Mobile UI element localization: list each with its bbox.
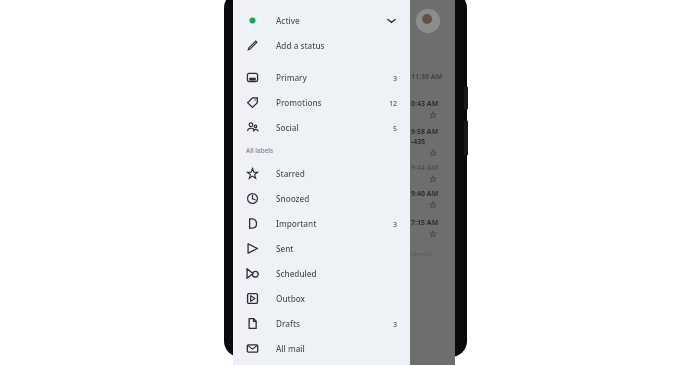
staticText: 7:15 AM <box>411 218 439 228</box>
staticText: Scheduled <box>276 268 317 279</box>
staticText: identity <box>411 250 433 258</box>
staticText: 9:40 AM <box>411 189 439 199</box>
staticText: 0:43 AM <box>411 99 439 109</box>
button[interactable]: Active <box>233 8 410 33</box>
staticText: 3 <box>393 73 398 83</box>
button[interactable]: Scheduled <box>233 261 410 286</box>
button[interactable]: Primary <box>233 65 410 90</box>
button[interactable]: Important <box>233 211 410 236</box>
staticText: All labels <box>246 146 274 155</box>
other: Expand status <box>385 14 398 27</box>
staticText: Promotions <box>276 97 322 108</box>
staticText: Social <box>276 122 299 133</box>
button[interactable]: Add a status <box>233 33 410 58</box>
staticText: 5 <box>393 123 398 133</box>
staticText: All mail <box>276 343 305 354</box>
staticText: 12 <box>389 98 398 108</box>
staticText: -435 <box>411 137 426 147</box>
staticText: 3 <box>393 319 398 329</box>
button[interactable]: Social <box>233 115 410 140</box>
button[interactable]: Drafts <box>233 311 410 336</box>
staticText: Important <box>276 218 317 229</box>
staticText: 9:58 AM <box>411 127 439 137</box>
button[interactable]: Outbox <box>233 286 410 311</box>
staticText: Active <box>276 15 300 26</box>
staticText: Add a status <box>276 40 325 51</box>
staticText: Starred <box>276 168 305 179</box>
staticText: 3 <box>393 219 398 229</box>
button[interactable]: All mail <box>233 336 410 361</box>
staticText: Primary <box>276 72 307 83</box>
button[interactable]: Snoozed <box>233 186 410 211</box>
button[interactable]: Sent <box>233 236 410 261</box>
button[interactable]: Starred <box>233 161 410 186</box>
button[interactable]: Promotions <box>233 90 410 115</box>
staticText: Outbox <box>276 293 306 304</box>
staticText: Snoozed <box>276 193 310 204</box>
staticText: Sent <box>276 243 294 254</box>
staticText: 9:44 AM <box>411 163 439 173</box>
staticText: 11:30 AM <box>411 72 443 82</box>
staticText: Drafts <box>276 318 301 329</box>
